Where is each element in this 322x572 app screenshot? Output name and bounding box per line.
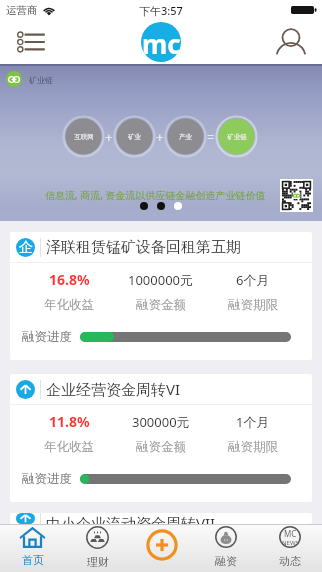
staticText: 企: [19, 239, 33, 257]
staticText: 下午3:57: [139, 3, 183, 18]
button[interactable]: Logo: [141, 22, 181, 62]
staticText: 300000元: [132, 413, 190, 431]
staticText: 矿业链: [227, 133, 247, 141]
staticText: 11.8%: [49, 412, 90, 431]
button[interactable]: Profile: [271, 20, 311, 64]
button[interactable]: 融资: [194, 524, 258, 572]
staticText: 融资进度: [22, 471, 72, 487]
staticText: 互联网: [74, 133, 94, 141]
button[interactable]: MC: [258, 524, 322, 572]
staticText: 年化收益: [44, 297, 94, 313]
staticText: 泽联租赁锰矿设备回租第五期: [46, 238, 241, 257]
staticText: 年化收益: [44, 439, 94, 455]
button[interactable]: 理财: [65, 524, 130, 572]
staticText: 动态: [279, 554, 301, 568]
button[interactable]: 企业经营资金周转VI: [10, 374, 312, 502]
staticText: 6个月: [236, 271, 270, 289]
staticText: +: [156, 128, 164, 146]
button[interactable]: 首页: [0, 524, 65, 572]
staticText: 信息流, 商流, 资金流以供应链金融创造产业链价值: [45, 188, 266, 202]
staticText: NEWS: [282, 539, 299, 547]
staticText: 矿业: [128, 133, 141, 141]
staticText: =: [207, 128, 215, 146]
staticText: 理财: [87, 555, 109, 569]
staticText: mc: [142, 26, 181, 61]
staticText: +: [105, 128, 113, 146]
button[interactable]: Add: [130, 524, 194, 572]
button[interactable]: 企: [10, 232, 312, 360]
staticText: 融资金额: [136, 297, 186, 313]
staticText: 产业: [179, 133, 192, 141]
staticText: 融资进度: [22, 329, 72, 345]
staticText: 运营商: [6, 4, 38, 17]
button[interactable]: 中小企业流动资金周转VII: [10, 513, 312, 524]
staticText: 融资期限: [228, 439, 278, 455]
staticText: 中小企业流动资金周转VII: [46, 513, 216, 524]
staticText: 1000000元: [128, 271, 194, 289]
staticText: 企业经营资金周转VI: [46, 379, 181, 399]
staticText: 矿业链: [29, 75, 53, 85]
staticText: 首页: [22, 553, 44, 567]
staticText: 融资: [215, 554, 237, 568]
staticText: MC: [284, 528, 297, 539]
staticText: 融资金额: [136, 439, 186, 455]
staticText: 16.8%: [49, 270, 90, 289]
staticText: 1个月: [236, 413, 270, 431]
staticText: 融资期限: [228, 297, 278, 313]
button[interactable]: Menu: [11, 22, 49, 62]
